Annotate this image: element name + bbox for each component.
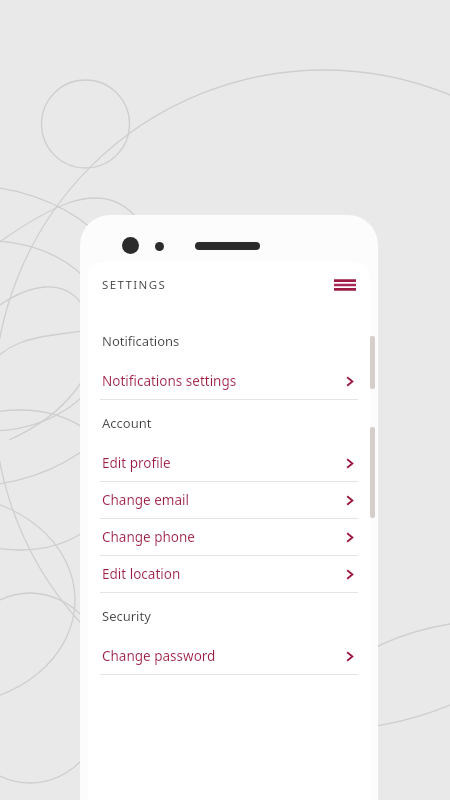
staticText: Edit location (102, 565, 181, 583)
staticText: Edit profile (102, 454, 171, 472)
staticText: Account (102, 414, 152, 432)
staticText: Change phone (102, 528, 195, 546)
staticText: Notifications settings (102, 372, 237, 390)
staticText: SETTINGS (102, 277, 167, 293)
staticText: Change email (102, 491, 189, 509)
button[interactable]: Notifications settings (88, 363, 370, 399)
staticText: Security (102, 607, 151, 625)
staticText: Notifications (102, 332, 180, 350)
staticText: Change password (102, 647, 216, 665)
button[interactable]: Change phone (88, 519, 370, 555)
button[interactable]: Change password (88, 638, 370, 674)
button[interactable]: Menu (332, 272, 358, 298)
button[interactable]: Edit location (88, 556, 370, 592)
button[interactable]: Change email (88, 482, 370, 518)
button[interactable]: Edit profile (88, 445, 370, 481)
